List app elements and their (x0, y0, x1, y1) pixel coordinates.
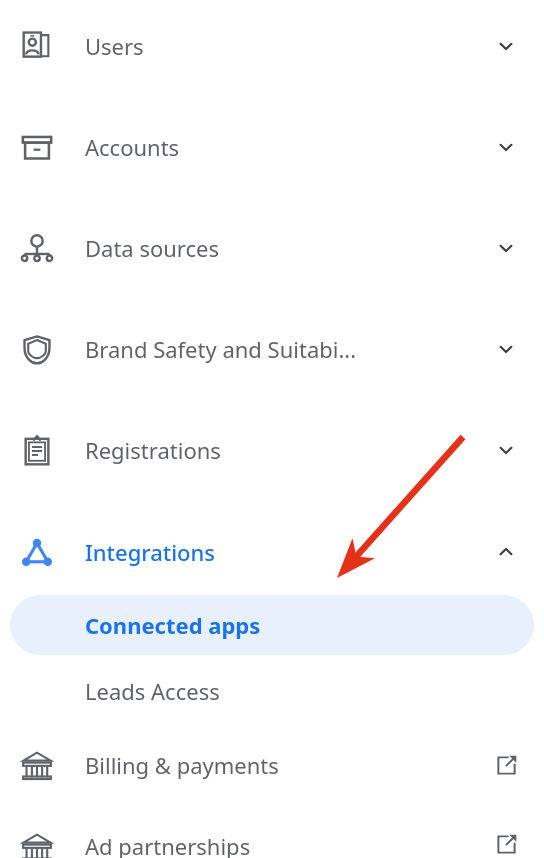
other: Expand Accounts (480, 121, 532, 173)
button[interactable]: Brand Safety and Suitabi... (0, 315, 544, 383)
button[interactable]: Users (0, 12, 544, 80)
button[interactable]: Connected apps (10, 595, 534, 655)
other: Expand Data sources (480, 222, 532, 274)
staticText: Data sources (85, 233, 480, 263)
button[interactable]: Integrations (0, 518, 544, 586)
other: Expand Brand Safety and Suitabi... (480, 323, 532, 375)
staticText: Ad partnerships (85, 831, 480, 858)
staticText: Registrations (85, 435, 480, 465)
staticText: Connected apps (85, 610, 261, 640)
button[interactable]: Accounts (0, 113, 544, 181)
button[interactable]: Leads Access (10, 661, 534, 721)
other: Open Ad partnerships (480, 831, 532, 858)
staticText: Brand Safety and Suitabi... (85, 334, 480, 364)
other: Expand Integrations (480, 526, 532, 578)
staticText: Users (85, 31, 480, 61)
button[interactable]: Ad partnerships (0, 831, 544, 858)
staticText: Leads Access (85, 676, 220, 706)
staticText: Accounts (85, 132, 480, 162)
button[interactable]: Data sources (0, 214, 544, 282)
other: Open Billing & payments (480, 739, 532, 791)
button[interactable]: Registrations (0, 416, 544, 484)
staticText: Integrations (85, 537, 480, 567)
other: Expand Registrations (480, 424, 532, 476)
other: Expand Users (480, 20, 532, 72)
button[interactable]: Billing & payments (0, 731, 544, 799)
staticText: Billing & payments (85, 750, 480, 780)
